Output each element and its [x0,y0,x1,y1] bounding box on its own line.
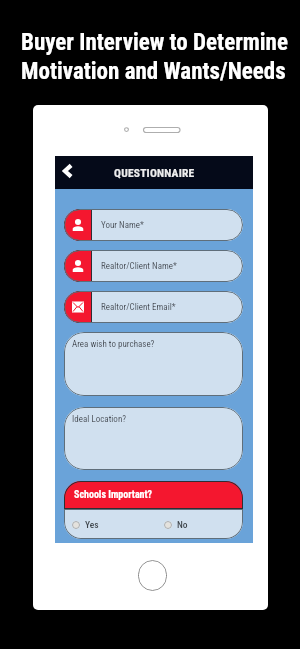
button[interactable]: Your Name* [64,209,243,241]
staticText: Buyer Interview to Determine [21,29,288,56]
staticText: Area wish to purchase? [72,339,155,350]
staticText: Yes [85,519,99,530]
staticText: QUESTIONNAIRE [114,166,195,179]
staticText: Realtor/Client Name* [101,261,177,272]
button[interactable]: Realtor/Client Name* [64,250,243,282]
button[interactable]: Yes [72,519,156,530]
staticText: Motivation and Wants/Needs [21,58,286,85]
staticText: No [177,519,188,530]
staticText: Your Name* [101,220,144,231]
button[interactable]: Schools Important? [64,481,243,509]
button[interactable]: Back [57,160,79,182]
staticText: Realtor/Client Email* [101,302,176,313]
button[interactable]: Realtor/Client Email* [64,291,243,323]
staticText: Ideal Location? [72,414,127,425]
button[interactable]: Area wish to purchase? [64,332,243,396]
button[interactable]: Ideal Location? [64,407,243,470]
button[interactable]: Home [138,560,167,591]
button[interactable]: No [164,519,241,530]
staticText: Schools Important? [74,489,153,501]
